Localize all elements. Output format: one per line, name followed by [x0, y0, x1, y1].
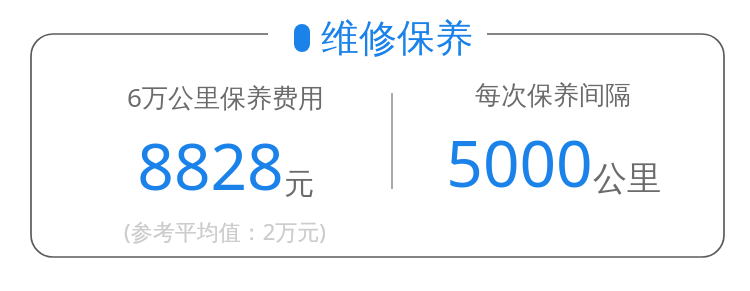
staticText: 公里	[593, 157, 661, 200]
button[interactable]: 每次保养间隔	[394, 79, 712, 206]
staticText: 8828	[137, 122, 284, 209]
staticText: 维修保养	[321, 14, 473, 62]
button[interactable]: 维修保养	[294, 14, 473, 62]
staticText: (参考平均值：2万元)	[124, 216, 326, 246]
staticText: 6万公里保养费用	[127, 79, 324, 115]
staticText: 每次保养间隔	[475, 79, 631, 112]
staticText: 5000	[446, 119, 593, 206]
staticText: 元	[284, 165, 314, 203]
button[interactable]: 6万公里保养费用	[60, 79, 390, 246]
other: 维修保养	[294, 24, 310, 52]
